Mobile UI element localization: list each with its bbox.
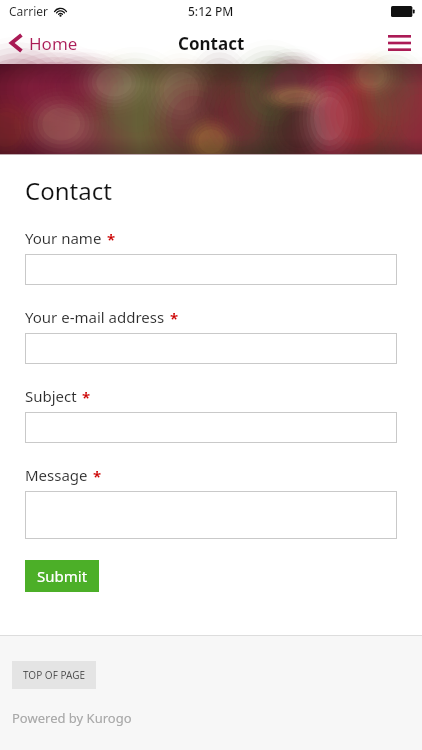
button[interactable]: Submit bbox=[25, 560, 99, 592]
button[interactable] bbox=[25, 412, 397, 443]
button[interactable] bbox=[25, 491, 397, 539]
staticText: Submit bbox=[37, 566, 88, 586]
staticText: Contact bbox=[178, 32, 245, 55]
button[interactable] bbox=[25, 333, 397, 364]
staticText: Contact bbox=[25, 174, 112, 207]
staticText: * bbox=[107, 229, 116, 249]
staticText: Subject bbox=[25, 386, 77, 406]
button[interactable]: TOP OF PAGE bbox=[12, 661, 96, 689]
staticText: 5:12 PM bbox=[188, 3, 234, 19]
staticText: Message bbox=[25, 465, 88, 485]
staticText: Your e-mail address bbox=[25, 307, 165, 327]
staticText: TOP OF PAGE bbox=[23, 668, 85, 682]
staticText: * bbox=[170, 308, 179, 328]
button[interactable]: Menu bbox=[376, 22, 422, 64]
staticText: Your name bbox=[25, 228, 102, 248]
staticText: Home bbox=[29, 32, 78, 55]
staticText: * bbox=[82, 387, 91, 407]
staticText: Carrier bbox=[9, 3, 49, 19]
staticText: Powered by Kurogo bbox=[12, 709, 132, 727]
button[interactable] bbox=[25, 254, 397, 285]
staticText: * bbox=[93, 466, 102, 486]
button[interactable]: Home bbox=[0, 22, 88, 64]
